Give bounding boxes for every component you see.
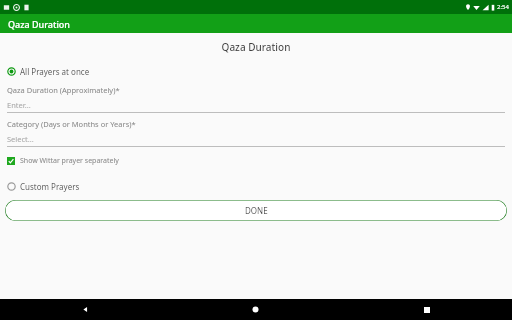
button[interactable]: All Prayers at once <box>0 64 512 79</box>
button[interactable]: Home <box>245 299 266 320</box>
staticText: Category (Days or Months or Years)* <box>7 119 136 129</box>
staticText: Show Wittar prayer separately <box>20 156 119 166</box>
staticText: DONE <box>245 205 268 216</box>
button[interactable]: DONE <box>5 200 507 221</box>
staticText: Custom Prayers <box>20 181 80 192</box>
button[interactable]: Custom Prayers <box>0 179 512 194</box>
button[interactable]: Show Wittar prayer separately <box>0 154 512 168</box>
staticText: All Prayers at once <box>20 66 90 77</box>
staticText: Qaza Duration <box>8 18 71 30</box>
button[interactable]: Back <box>75 299 96 320</box>
staticText: Enter... <box>7 100 31 110</box>
staticText: 2:54 <box>497 3 509 11</box>
button[interactable]: Recent apps <box>416 299 437 320</box>
staticText: Qaza Duration (Approximately)* <box>7 85 120 95</box>
staticText: Select... <box>7 134 34 144</box>
staticText: Qaza Duration <box>0 40 512 54</box>
